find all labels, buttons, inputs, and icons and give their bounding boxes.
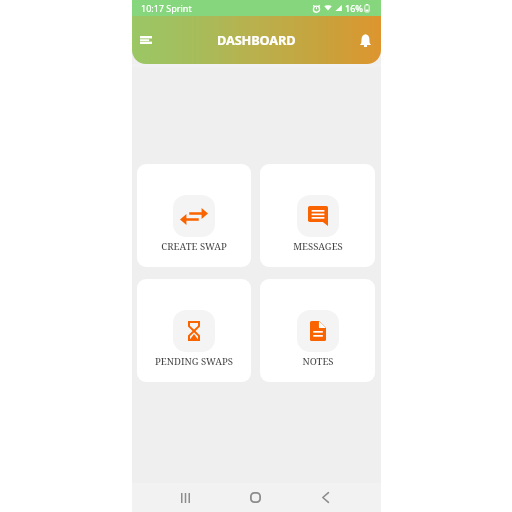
staticText: DASHBOARD [217,31,296,48]
button[interactable]: MESSAGES [260,164,375,267]
button[interactable]: Open navigation menu [133,27,159,53]
staticText: 16% [345,2,363,14]
button[interactable]: CREATE SWAP [137,164,251,267]
staticText: PENDING SWAPS [155,355,233,368]
staticText: CREATE SWAP [161,240,227,253]
button[interactable]: Home [235,483,275,512]
button[interactable]: NOTES [260,279,375,382]
staticText: 10:17 Sprint [141,2,192,14]
button[interactable]: Back [305,483,345,512]
staticText: NOTES [302,355,334,368]
button[interactable]: PENDING SWAPS [137,279,251,382]
staticText: MESSAGES [293,240,343,253]
button[interactable]: Recent apps [165,483,205,512]
button[interactable]: Notifications [352,27,378,53]
